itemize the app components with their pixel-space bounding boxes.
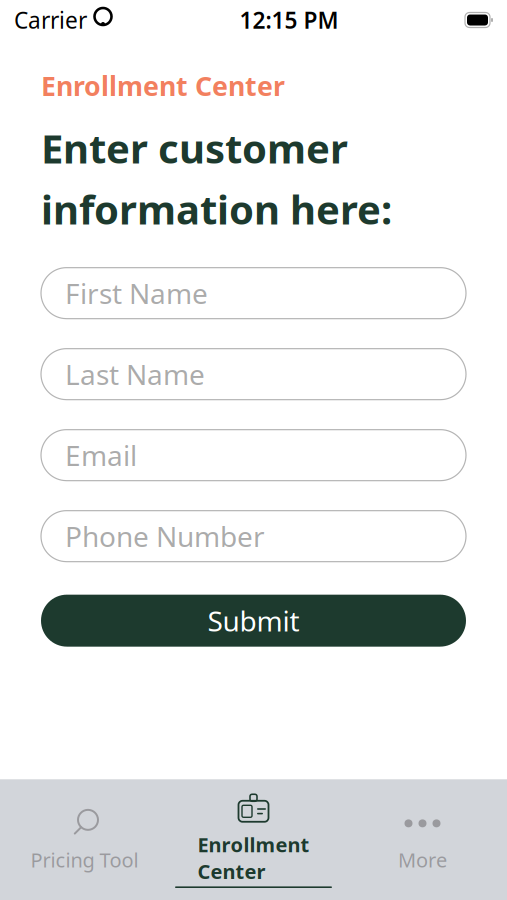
staticText: Enter customer information here:: [41, 121, 392, 236]
staticText: Enrollment Center: [41, 68, 285, 103]
button[interactable]: Pricing Tool: [0, 808, 169, 873]
button[interactable]: More: [338, 808, 507, 873]
button[interactable]: Last Name: [41, 349, 466, 400]
staticText: Last Name: [65, 356, 205, 393]
staticText: Submit: [207, 602, 299, 639]
staticText: Carrier: [14, 5, 87, 35]
staticText: 12:15 PM: [239, 5, 338, 35]
staticText: First Name: [65, 275, 208, 312]
staticText: Phone Number: [65, 518, 265, 555]
staticText: Enrollment Center: [197, 831, 309, 884]
button[interactable]: Enrollment Center: [169, 793, 338, 888]
button[interactable]: First Name: [41, 268, 466, 319]
button[interactable]: Phone Number: [41, 511, 466, 562]
button[interactable]: Email: [41, 430, 466, 481]
staticText: Email: [65, 437, 137, 474]
staticText: More: [398, 846, 447, 873]
staticText: Pricing Tool: [30, 846, 138, 873]
button[interactable]: Submit: [41, 595, 466, 647]
